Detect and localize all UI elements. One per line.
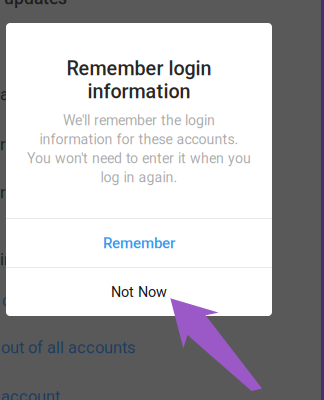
staticText: account (1, 387, 60, 400)
staticText: You won't need to enter it when you (27, 150, 251, 167)
staticText: a (0, 85, 9, 104)
staticText: Remember login (66, 57, 211, 80)
staticText: c (2, 291, 11, 310)
staticText: Remember (103, 234, 175, 252)
staticText: information for these accounts. (39, 131, 238, 148)
staticText: information (87, 80, 190, 103)
staticText: updates (4, 0, 67, 9)
staticText: We'll remember the login (63, 112, 215, 129)
staticText: Not Now (111, 284, 167, 300)
staticText: log in again. (100, 169, 177, 186)
staticText: in (0, 250, 13, 269)
button[interactable]: Remember (6, 219, 272, 267)
staticText: r (0, 183, 6, 202)
staticText: out of all accounts (1, 338, 136, 357)
staticText: r (0, 135, 6, 154)
button[interactable]: Not Now (6, 268, 272, 316)
